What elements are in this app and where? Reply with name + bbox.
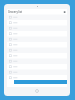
button[interactable] [7,39,67,45]
button[interactable] [7,69,67,75]
button[interactable] [7,75,67,81]
button[interactable]: Grocery list [8,10,23,14]
button[interactable] [7,15,67,21]
button[interactable] [7,27,67,33]
button[interactable] [7,45,67,51]
button[interactable]: Primary action [14,80,70,84]
button[interactable] [7,51,67,57]
button[interactable]: More options [62,11,65,14]
button[interactable] [7,33,67,39]
button[interactable] [7,63,67,69]
button[interactable] [7,21,67,27]
staticText: Grocery list [8,10,23,14]
button[interactable] [7,81,67,87]
button[interactable] [7,57,67,63]
